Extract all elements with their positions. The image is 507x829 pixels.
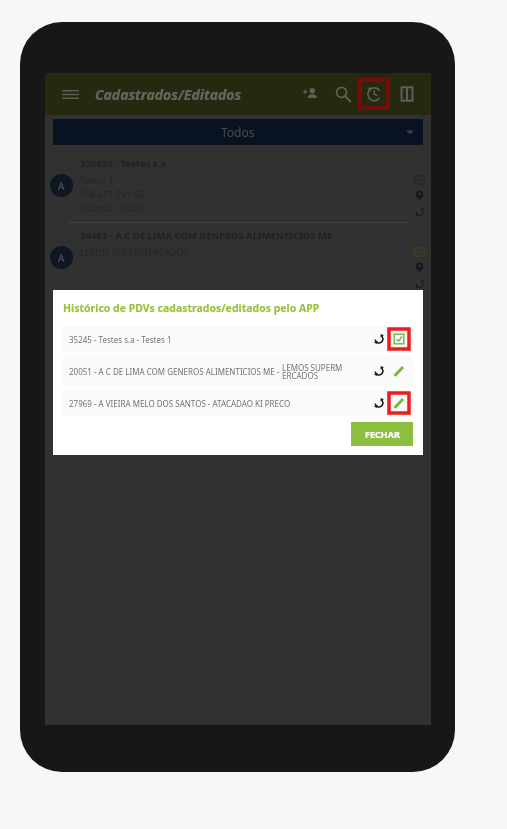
button[interactable]: Todos: [53, 119, 423, 145]
button[interactable]: Sync: [370, 330, 388, 348]
button[interactable]: FECHAR: [351, 422, 413, 446]
staticText: LEMOS SUPERMERCADOS: [80, 246, 189, 258]
staticText: Testes 1: [80, 174, 114, 186]
button[interactable]: 27969 - A VIEIRA MELO DOS SANTOS - ATACA…: [63, 390, 413, 416]
staticText: 058.671.791-92: [80, 188, 145, 200]
button[interactable]: 30403 - A C DE LIMA COM GENEROS ALIMENTI…: [45, 223, 431, 294]
staticText: A: [58, 179, 65, 193]
staticText: Histórico de PDVs cadastrados/editados p…: [63, 301, 320, 315]
staticText: 30403 - A C DE LIMA COM GENEROS ALIMENTI…: [80, 229, 333, 242]
staticText: FECHAR: [365, 428, 400, 440]
staticText: Goiânia - Goiás: [80, 202, 144, 214]
button[interactable]: History: [359, 79, 389, 109]
staticText: 20051 - A C DE LIMA COM GENEROS ALIMENTI…: [69, 366, 282, 377]
button[interactable]: Sync: [370, 394, 388, 412]
button[interactable]: Note: [388, 328, 410, 350]
button[interactable]: Menu: [55, 79, 85, 109]
button[interactable]: 320022 - Testes s.a: [45, 151, 431, 222]
staticText: 320022 - Testes s.a: [80, 157, 167, 170]
staticText: 27969 - A VIEIRA MELO DOS SANTOS - ATACA…: [69, 398, 291, 409]
button[interactable]: Map: [393, 80, 421, 108]
staticText: Todos: [221, 124, 255, 140]
button[interactable]: Edit: [388, 392, 410, 414]
button[interactable]: 35245 - Testes s.a - Testes 1: [63, 326, 413, 352]
staticText: A: [58, 251, 65, 265]
button[interactable]: Add person: [297, 80, 325, 108]
staticText: LEMOS SUPERM ERCADOS: [282, 362, 343, 381]
staticText: Cadastrados/Editados: [95, 85, 242, 104]
button[interactable]: Edit: [388, 360, 410, 382]
staticText: 35245 - Testes s.a - Testes 1: [69, 334, 172, 345]
button[interactable]: Search: [329, 80, 357, 108]
button[interactable]: 20051 - A C DE LIMA COM GENEROS ALIMENTI…: [63, 356, 413, 386]
button[interactable]: Sync: [370, 362, 388, 380]
